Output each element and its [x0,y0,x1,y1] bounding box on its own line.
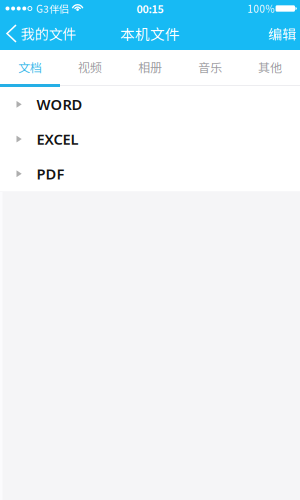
button[interactable]: 其他 [240,50,300,84]
staticText: 我的文件 [20,23,76,44]
button[interactable]: EXCEL [0,122,300,156]
staticText: 其他 [258,58,282,76]
staticText: 视频 [78,58,102,76]
button[interactable]: PDF [0,156,300,191]
button[interactable]: 音乐 [180,50,240,84]
button[interactable]: 我的文件 [0,17,84,50]
staticText: 本机文件 [120,23,180,44]
button[interactable]: WORD [0,87,300,122]
staticText: G3伴侣 [36,1,69,16]
staticText: PDF [36,164,64,184]
staticText: WORD [36,94,82,114]
staticText: 00:15 [136,1,163,16]
button[interactable]: 编辑 [256,17,300,50]
staticText: EXCEL [36,129,78,149]
button[interactable]: 文档 [0,50,60,84]
button[interactable]: 相册 [120,50,180,84]
staticText: 相册 [138,58,162,76]
staticText: 编辑 [268,23,296,44]
staticText: 音乐 [198,58,222,76]
button[interactable]: 视频 [60,50,120,84]
staticText: 文档 [18,58,42,76]
staticText: 100% [247,1,274,16]
